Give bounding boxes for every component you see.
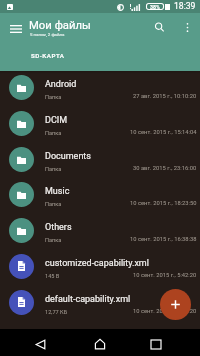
staticText: Папка — [45, 130, 62, 137]
button[interactable]: Others — [0, 213, 200, 249]
staticText: customized-capability.xml — [45, 258, 197, 269]
button[interactable]: Android — [0, 70, 200, 106]
button[interactable]: default-capability.xml — [0, 285, 200, 321]
staticText: Папка — [45, 237, 62, 244]
staticText: Android — [45, 79, 197, 90]
button[interactable]: Music — [0, 177, 200, 213]
button[interactable]: Search — [148, 16, 170, 38]
staticText: 27 авг. 2015 г., 10:10:20 — [133, 93, 197, 100]
staticText: DCIM — [45, 115, 197, 126]
button[interactable]: Add — [160, 289, 191, 320]
button[interactable]: DCIM — [0, 106, 200, 142]
button[interactable]: Back — [29, 333, 51, 355]
staticText: Documents — [45, 151, 197, 162]
staticText: 18:39 — [174, 1, 196, 11]
button[interactable]: More options — [176, 16, 198, 38]
staticText: 10 сент. 2015 г., 16:38:38 — [130, 236, 197, 243]
staticText: 10 сент. 2015 г., 15:14:04 — [130, 129, 197, 136]
staticText: 12,77 КБ — [45, 309, 68, 316]
staticText: Папка — [45, 201, 62, 208]
staticText: Мои файлы — [29, 19, 91, 32]
staticText: 10 сент. 2015 г., 5:42:20 — [133, 308, 197, 315]
staticText: Папка — [45, 166, 62, 173]
button[interactable]: Home — [89, 333, 111, 355]
button[interactable]: customized-capability.xml — [0, 249, 200, 285]
staticText: Папка — [45, 94, 62, 101]
staticText: 10 сент. 2015 г., 18:23:50 — [130, 200, 197, 207]
staticText: 145 B — [45, 273, 60, 280]
staticText: default-capability.xml — [45, 294, 197, 305]
staticText: 30 авг. 2015 г., 23:16:00 — [133, 165, 197, 172]
button[interactable]: Documents — [0, 142, 200, 178]
staticText: 38% — [150, 4, 160, 10]
staticText: 10 сент. 2015 г., 5:42:20 — [133, 272, 197, 279]
staticText: Others — [45, 222, 197, 233]
button[interactable]: Menu — [3, 16, 28, 41]
button[interactable]: Recent apps — [145, 333, 167, 355]
staticText: Music — [45, 186, 197, 197]
staticText: 5 папок, 2 файла — [30, 32, 65, 37]
staticText: SD-КАРТА — [31, 52, 65, 59]
button[interactable]: SD-КАРТА — [0, 42, 95, 68]
